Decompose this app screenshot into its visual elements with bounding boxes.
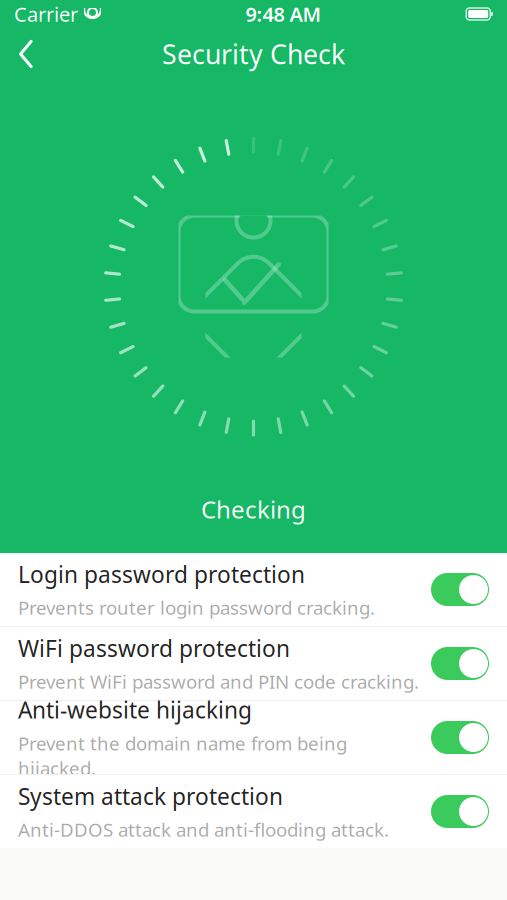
button[interactable]: Back [0, 30, 52, 78]
staticText: Security Check [162, 36, 345, 72]
button[interactable]: Login password protection [0, 553, 507, 626]
staticText: Carrier [14, 1, 78, 27]
staticText: System attack protection [18, 781, 283, 811]
button[interactable]: WiFi password protection [0, 627, 507, 700]
staticText: Prevent WiFi password and PIN code crack… [18, 669, 419, 694]
staticText: Prevent the domain name from being hijac… [18, 731, 347, 780]
staticText: Anti-website hijacking [18, 695, 252, 725]
staticText: Prevents router login password cracking. [18, 595, 375, 620]
button[interactable]: System attack protection [0, 775, 507, 848]
staticText: Anti-DDOS attack and anti-flooding attac… [18, 817, 389, 842]
staticText: 9:48 AM [245, 1, 321, 27]
staticText: Checking [201, 493, 306, 525]
button[interactable]: Anti-website hijacking [0, 701, 507, 774]
staticText: WiFi password protection [18, 633, 290, 663]
staticText: Login password protection [18, 559, 305, 589]
